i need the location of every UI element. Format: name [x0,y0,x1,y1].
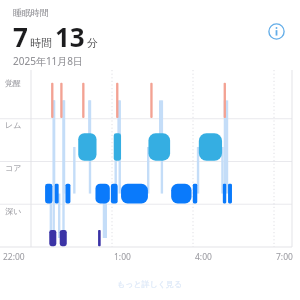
staticText: 22:00 [3,251,25,263]
staticText: 1:00 [114,251,131,263]
staticText: レム [5,120,22,130]
button[interactable]: 覚醒 [0,68,300,270]
staticText: コア [5,163,22,173]
staticText: 7:00 [276,251,293,263]
staticText: 7 [13,19,28,54]
staticText: 深い [5,206,22,216]
staticText: 時間 [30,36,52,50]
staticText: 分 [87,36,98,50]
staticText: もっと詳しく見る [117,279,183,289]
staticText: 4:00 [195,251,212,263]
staticText: 13 [55,19,85,54]
staticText: 2025年11月8日 [13,54,84,68]
button[interactable]: 詳細情報 [263,18,289,44]
staticText: 覚醒 [5,78,21,88]
staticText: 睡眠時間 [13,7,49,18]
